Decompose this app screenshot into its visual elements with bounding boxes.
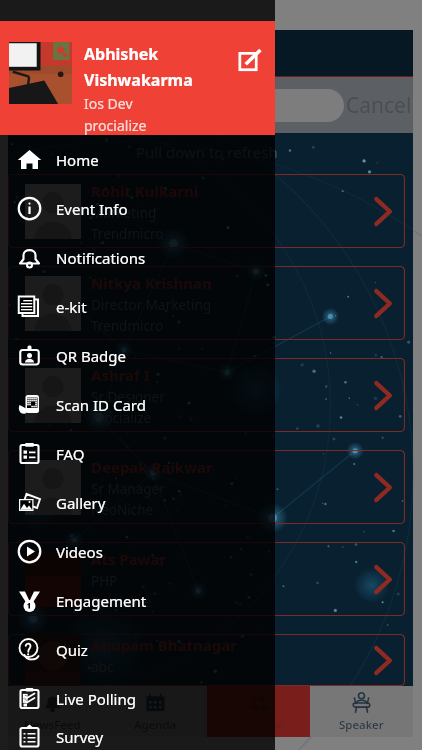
button[interactable]: Attendee xyxy=(207,686,310,737)
staticText: NeoNiche xyxy=(91,501,154,519)
button[interactable]: Ashraf I xyxy=(8,358,405,432)
button[interactable]: NewsFeed xyxy=(0,686,104,737)
button[interactable]: Anupam Bhatnagar xyxy=(8,634,405,686)
staticText: Pull down to refresh xyxy=(136,142,278,162)
button[interactable]: FAQ xyxy=(0,429,275,478)
staticText: PHP xyxy=(91,572,118,590)
button[interactable]: Home xyxy=(0,135,275,184)
staticText: e-kit xyxy=(56,297,87,317)
staticText: Home xyxy=(56,150,99,170)
staticText: Quiz xyxy=(56,640,88,660)
button[interactable]: Event Info xyxy=(0,184,275,233)
staticText: Attendee xyxy=(233,717,284,733)
button[interactable]: Speaker xyxy=(310,686,413,737)
staticText: Ashraf I xyxy=(91,365,150,385)
button[interactable]: Live Polling xyxy=(0,674,275,723)
button[interactable] xyxy=(8,89,344,122)
staticText: Scan ID Card xyxy=(56,395,146,415)
button[interactable]: Survey xyxy=(0,723,275,750)
staticText: Speaker xyxy=(339,717,384,733)
button[interactable]: Scan ID Card xyxy=(0,380,275,429)
staticText: Abhishek xyxy=(84,43,159,65)
staticText: Procialize xyxy=(91,593,152,611)
staticText: Vishwakarma xyxy=(84,69,193,91)
button[interactable]: Notifications xyxy=(0,233,275,282)
staticText: Ios Dev xyxy=(84,94,133,113)
staticText: Marketing xyxy=(91,204,157,222)
button[interactable]: Quiz xyxy=(0,625,275,674)
staticText: Deepak Raikwar xyxy=(91,457,213,477)
staticText: Videos xyxy=(56,542,103,562)
button[interactable]: Videos xyxy=(0,527,275,576)
staticText: Engagement xyxy=(56,591,147,611)
staticText: Agenda xyxy=(134,717,177,733)
staticText: Gallery xyxy=(56,493,106,513)
staticText: Director Marketing xyxy=(91,296,212,314)
staticText: xyz xyxy=(91,679,112,686)
staticText: Ats Pawar xyxy=(91,549,167,569)
button[interactable]: Ats Pawar xyxy=(8,542,405,616)
staticText: Event Info xyxy=(56,199,128,219)
button[interactable]: e-kit xyxy=(0,282,275,331)
button[interactable]: Agenda xyxy=(104,686,207,737)
staticText: QR Badge xyxy=(56,346,127,366)
staticText: Rohit Kulkarni xyxy=(91,181,199,201)
staticText: Nitkya Krishnan xyxy=(91,273,212,293)
staticText: Survey xyxy=(56,727,104,747)
staticText: Trendmicro xyxy=(91,225,164,243)
staticText: FAQ xyxy=(56,444,85,464)
staticText: procialize xyxy=(84,116,147,135)
staticText: Anupam Bhatnagar xyxy=(91,635,237,655)
button[interactable]: Edit profile xyxy=(239,50,260,71)
button[interactable]: Gallery xyxy=(0,478,275,527)
staticText: Sr Designer xyxy=(91,388,165,406)
button[interactable]: Deepak Raikwar xyxy=(8,450,405,524)
button[interactable]: Rohit Kulkarni xyxy=(8,174,405,248)
button[interactable]: Engagement xyxy=(0,576,275,625)
staticText: NewsFeed xyxy=(24,717,81,733)
staticText: abc xyxy=(91,658,114,676)
staticText: Live Polling xyxy=(56,689,136,709)
staticText: Sr Manager xyxy=(91,480,165,498)
button[interactable]: Cancel xyxy=(344,77,413,133)
staticText: Trendmicro xyxy=(91,317,164,335)
staticText: Procialize xyxy=(91,409,152,427)
staticText: Notifications xyxy=(56,248,146,268)
button[interactable]: QR Badge xyxy=(0,331,275,380)
button[interactable]: Nitkya Krishnan xyxy=(8,266,405,340)
staticText: Cancel xyxy=(346,91,412,120)
